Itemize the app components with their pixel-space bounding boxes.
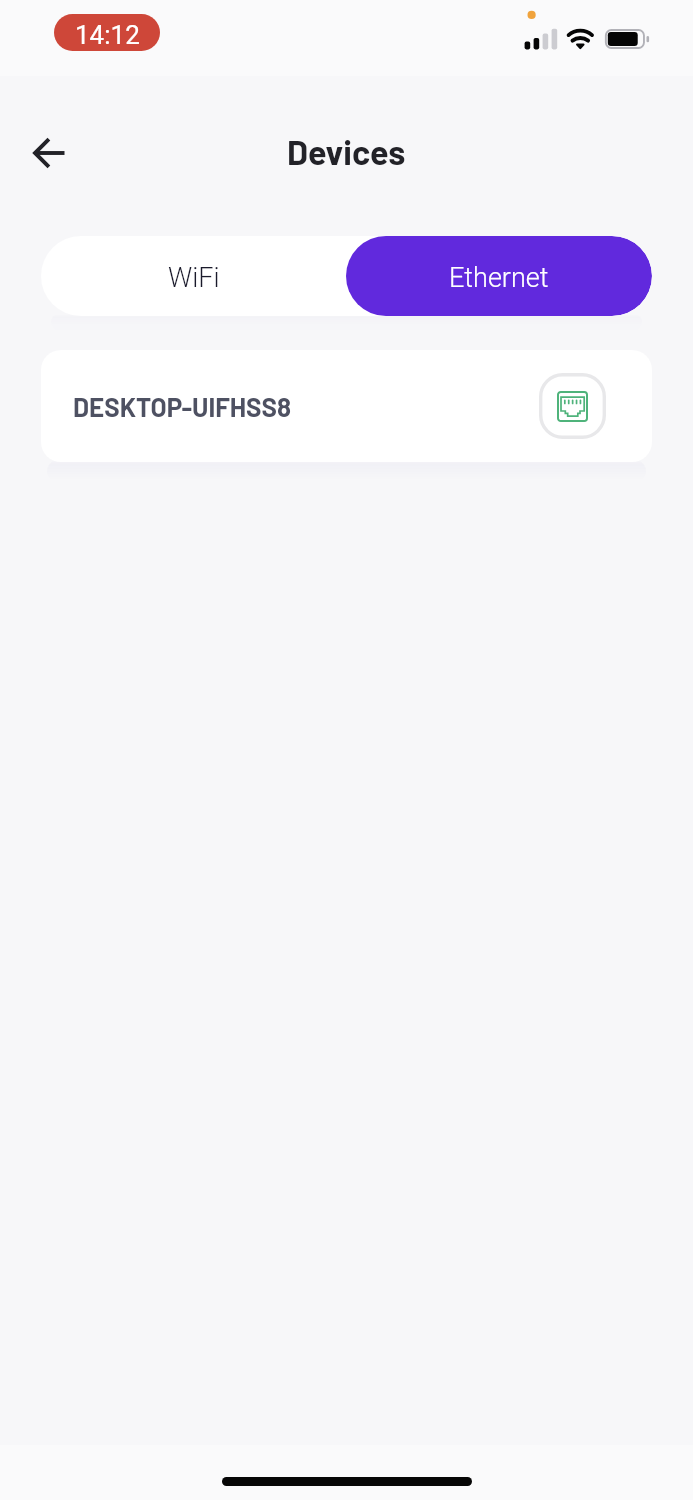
button[interactable]: Back [23,125,79,181]
staticText: DESKTOP-UIFHSS8 [73,391,292,422]
staticText: Devices [287,131,406,172]
button[interactable]: WiFi [41,236,346,316]
staticText: Ethernet [449,262,549,294]
button[interactable]: Ethernet port [539,373,606,439]
staticText: WiFi [168,262,220,294]
staticText: 14:12 [75,20,140,50]
button[interactable]: DESKTOP-UIFHSS8 [41,350,652,462]
button[interactable]: Ethernet [346,236,652,316]
